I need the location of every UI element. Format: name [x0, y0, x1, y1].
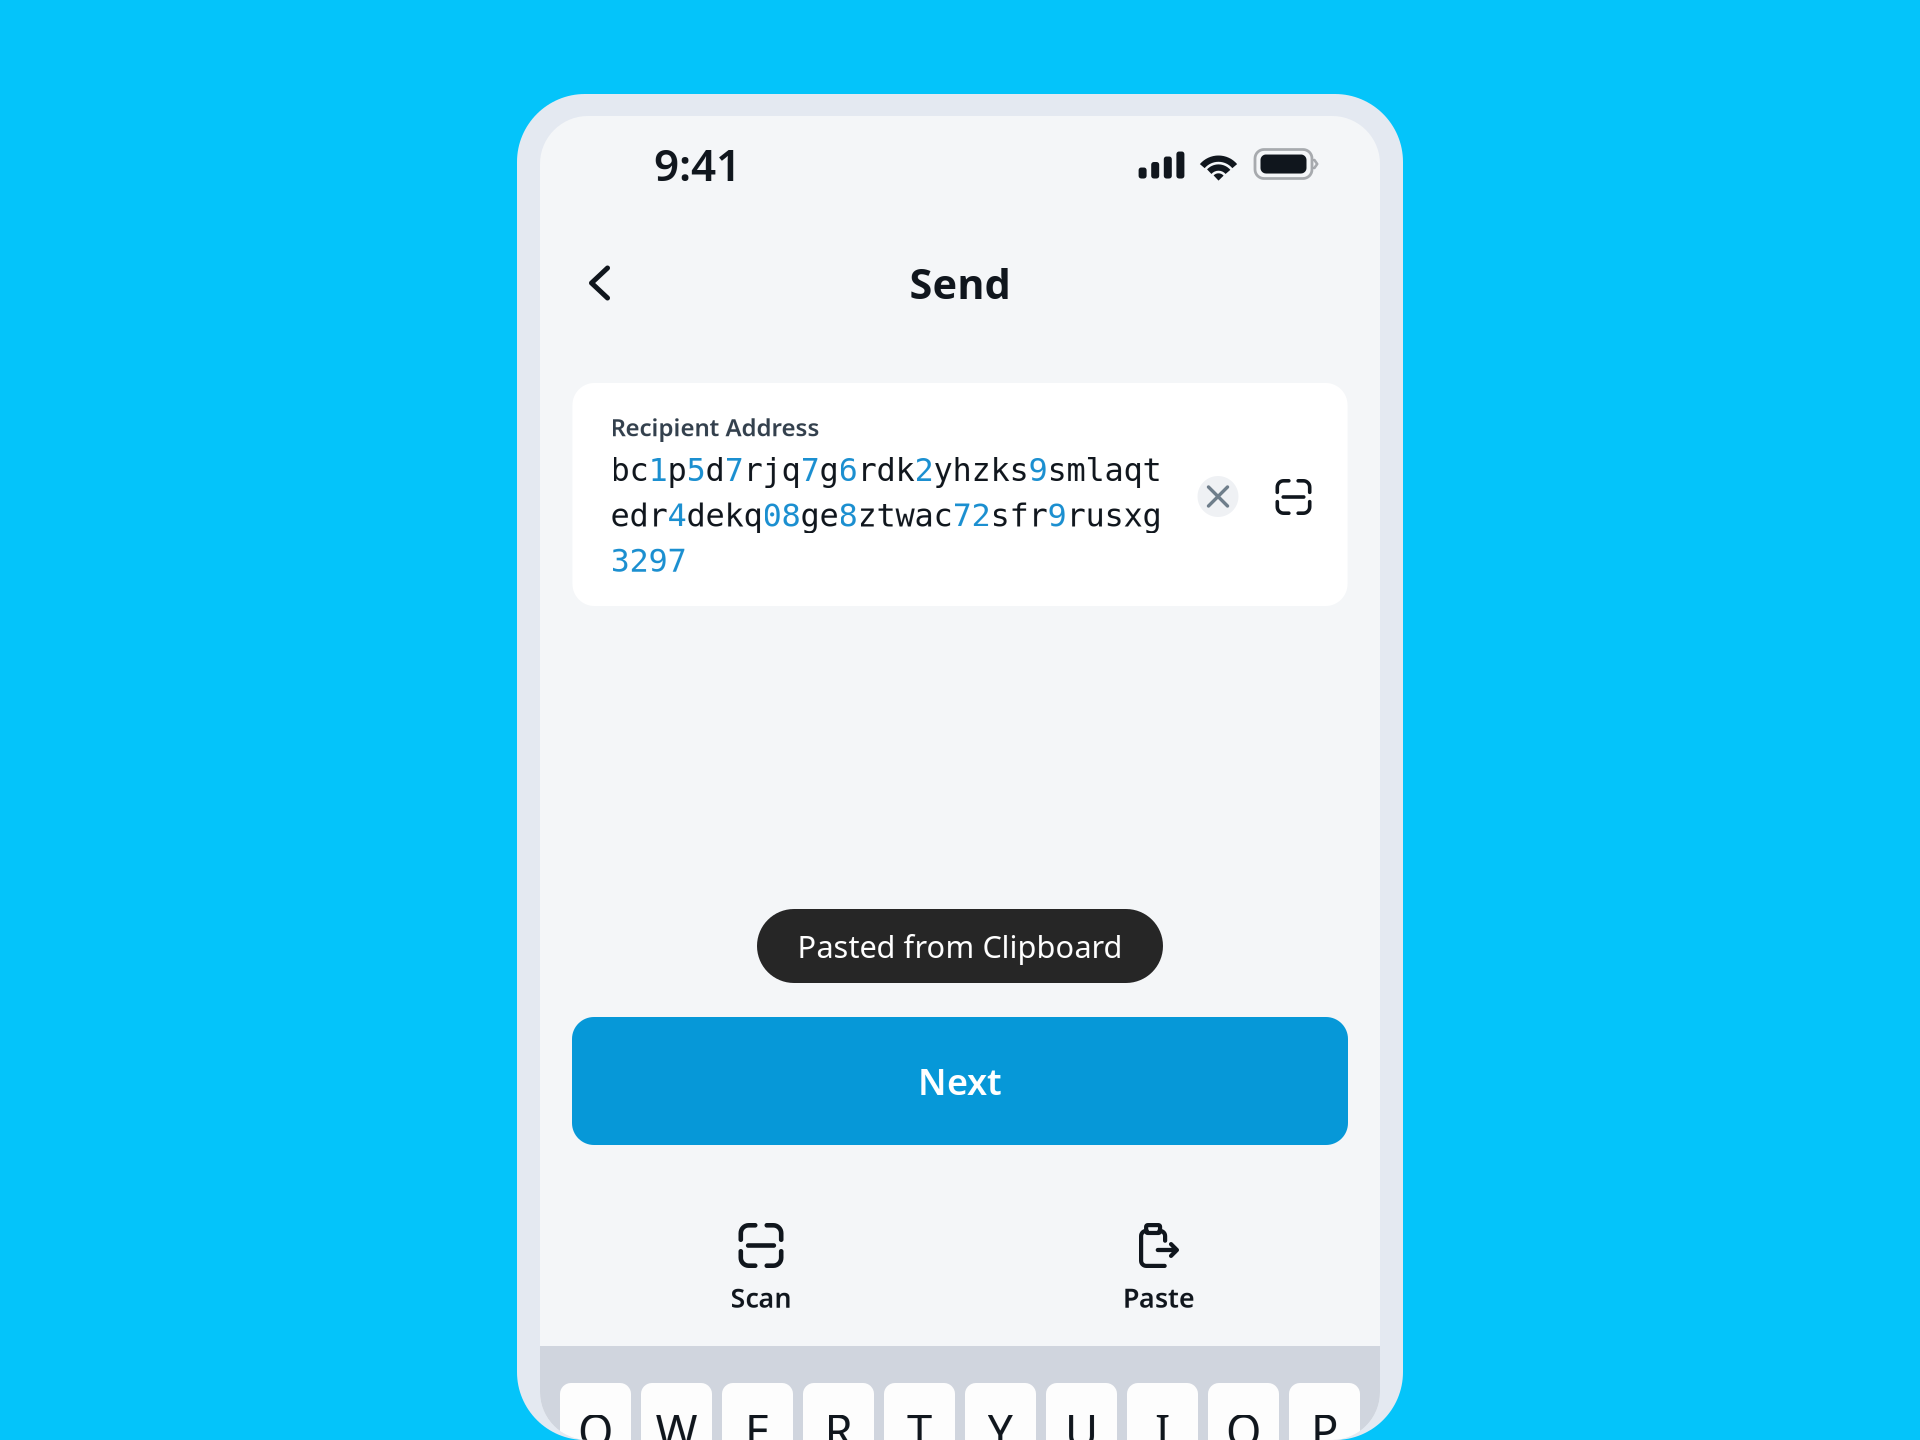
staticText: edr4dekq08ge8ztwac72sfr9rusxg — [610, 497, 1161, 533]
button[interactable]: Back — [540, 244, 634, 321]
button[interactable]: Next — [572, 1017, 1348, 1145]
staticText: I — [1155, 1400, 1170, 1440]
button[interactable]: Clear address — [1179, 458, 1256, 535]
staticText: Q — [578, 1400, 613, 1440]
staticText: bc1p5d7rjq7g6rdk2yhzks9smlaqt — [610, 452, 1161, 488]
staticText: Paste — [1123, 1280, 1195, 1315]
staticText: 9:41 — [654, 135, 741, 193]
staticText: T — [907, 1400, 932, 1440]
staticText: U — [1065, 1400, 1098, 1440]
staticText: Recipient Address — [610, 411, 819, 443]
button[interactable]: Scan QR code — [1259, 463, 1327, 531]
staticText: Pasted from Clipboard — [797, 926, 1122, 966]
button[interactable]: Scan — [671, 1223, 851, 1323]
staticText: 3297 — [610, 542, 686, 579]
staticText: O — [1226, 1400, 1261, 1440]
staticText: Y — [987, 1400, 1013, 1440]
staticText: Scan — [730, 1280, 791, 1315]
button[interactable]: Paste — [1069, 1223, 1249, 1323]
staticText: E — [745, 1400, 770, 1440]
staticText: Send — [909, 256, 1010, 310]
staticText: W — [655, 1400, 697, 1440]
staticText: P — [1311, 1400, 1338, 1440]
staticText: R — [824, 1400, 852, 1440]
staticText: Next — [918, 1057, 1002, 1105]
